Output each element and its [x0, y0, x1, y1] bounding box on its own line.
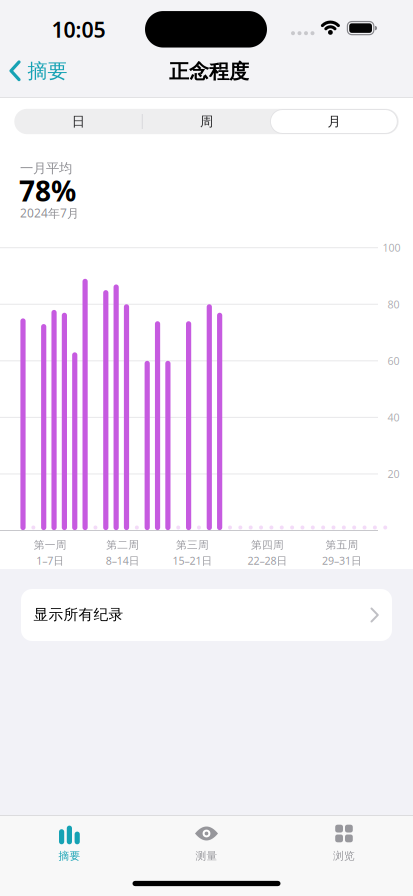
staticText: 月: [327, 113, 340, 130]
button[interactable]: 浏览: [299, 817, 389, 869]
staticText: 8–14日: [106, 553, 140, 568]
staticText: 第五周: [325, 538, 358, 551]
staticText: 第二周: [106, 538, 139, 551]
staticText: 78%: [19, 172, 76, 209]
staticText: 摘要: [27, 59, 67, 83]
staticText: 10:05: [51, 15, 105, 44]
button[interactable]: 摘要: [9, 59, 67, 83]
staticText: 周: [200, 113, 213, 130]
staticText: 摘要: [58, 849, 80, 862]
staticText: 显示所有纪录: [33, 605, 123, 623]
staticText: 日: [72, 113, 85, 130]
staticText: 15–21日: [172, 553, 212, 568]
staticText: 100: [382, 241, 400, 255]
staticText: 测量: [195, 849, 217, 862]
staticText: 第四周: [251, 538, 284, 551]
button[interactable]: 测量: [161, 817, 251, 869]
button[interactable]: 日: [18, 109, 138, 134]
staticText: 80: [388, 297, 400, 311]
staticText: 第三周: [176, 538, 209, 551]
staticText: 第一周: [34, 538, 67, 551]
staticText: 20: [388, 467, 400, 481]
button[interactable]: 显示所有纪录: [21, 589, 392, 641]
staticText: 29–31日: [322, 553, 362, 568]
staticText: 60: [388, 354, 400, 368]
button[interactable]: 摘要: [24, 817, 114, 869]
button[interactable]: 月: [270, 109, 397, 134]
button[interactable]: 周: [146, 109, 266, 134]
staticText: 22–28日: [247, 553, 287, 568]
staticText: 一月平均: [20, 160, 72, 176]
staticText: 1–7日: [36, 553, 64, 568]
staticText: 浏览: [333, 849, 355, 862]
staticText: 2024年7月: [20, 205, 79, 221]
staticText: 40: [388, 410, 400, 424]
staticText: 正念程度: [169, 59, 249, 84]
